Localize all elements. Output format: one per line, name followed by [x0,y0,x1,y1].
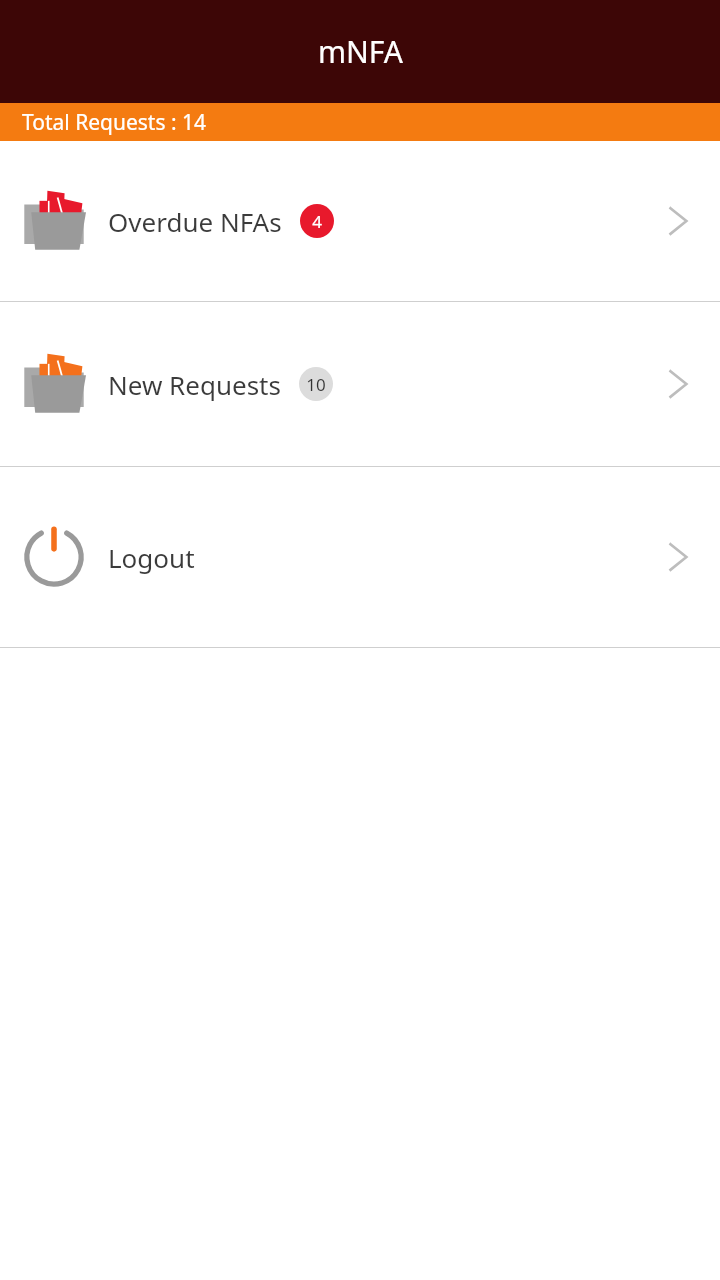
staticText: mNFA [318,31,403,72]
staticText: Logout [108,540,195,575]
staticText: Total Requests : 14 [22,108,207,137]
other: Open New Requests [658,364,698,404]
other: Open Logout [658,537,698,577]
staticText: 10 [306,373,326,396]
button[interactable]: New Requests [0,302,720,466]
staticText: New Requests [108,367,281,402]
staticText: 4 [312,210,322,233]
button[interactable]: Logout [0,467,720,647]
other: Open Overdue NFAs [658,201,698,241]
button[interactable]: Overdue NFAs [0,141,720,301]
staticText: Overdue NFAs [108,204,282,239]
